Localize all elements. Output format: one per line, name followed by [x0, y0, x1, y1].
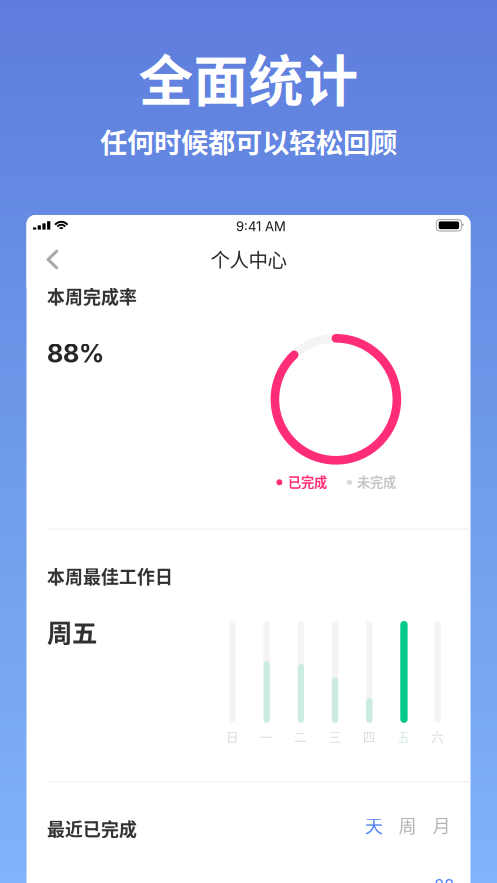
staticText: 五	[397, 727, 410, 745]
staticText: 周五	[47, 613, 97, 650]
staticText: 六	[431, 727, 444, 745]
staticText: 本周完成率	[47, 283, 137, 309]
staticText: 88	[434, 876, 454, 883]
button[interactable]: 月	[426, 812, 456, 838]
staticText: 已完成	[288, 472, 327, 491]
staticText: 本周最佳工作日	[47, 563, 173, 589]
staticText: 88%	[47, 338, 104, 369]
staticText: 最近已完成	[47, 816, 137, 841]
staticText: 未完成	[357, 472, 396, 491]
button[interactable]: Back	[33, 244, 75, 284]
staticText: 一	[260, 727, 273, 745]
staticText: 任何时候都可以轻松回顾	[100, 121, 397, 161]
button[interactable]: 周	[392, 812, 422, 838]
staticText: 9:41 AM	[236, 219, 286, 234]
staticText: 天	[365, 812, 383, 838]
staticText: 月	[432, 812, 450, 838]
staticText: 周	[398, 812, 416, 838]
staticText: 全面统计	[138, 37, 358, 117]
staticText: 二	[294, 727, 307, 745]
button[interactable]: 天	[359, 812, 389, 838]
staticText: 三	[329, 727, 342, 745]
staticText: 个人中心	[210, 245, 286, 273]
staticText: 日	[226, 727, 239, 745]
staticText: 四	[363, 727, 376, 745]
